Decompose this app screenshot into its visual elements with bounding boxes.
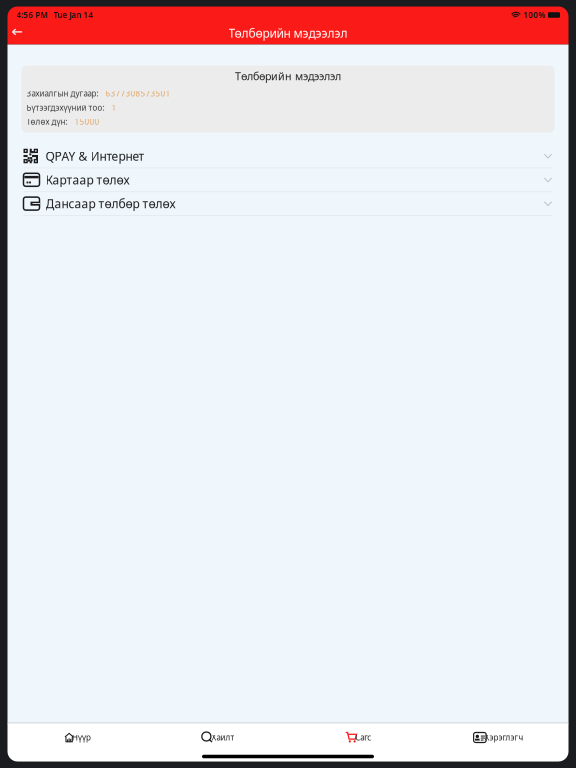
staticText: 1: [111, 102, 116, 113]
staticText: Бүтээгдэхүүний тоо:: [26, 102, 104, 113]
button[interactable]: Картаар төлөх: [7, 168, 568, 192]
staticText: QPAY & Интернет: [45, 148, 144, 164]
button[interactable]: Дансаар төлбөр төлөх: [7, 192, 568, 216]
staticText: Захиалгын дугаар:: [26, 88, 98, 99]
staticText: 15000: [74, 116, 99, 127]
staticText: Хайлт: [211, 732, 234, 743]
staticText: Картаар төлөх: [45, 172, 129, 188]
staticText: Төлөх дүн:: [26, 116, 67, 127]
button[interactable]: Хэрэглэгч: [428, 724, 568, 750]
staticText: Tue Jan 14: [53, 10, 93, 20]
staticText: Дансаар төлбөр төлөх: [45, 196, 175, 211]
staticText: Хэрэглэгч: [484, 732, 523, 743]
staticText: Нүүр: [72, 732, 91, 743]
staticText: Төлбөрийн мэдээлэл: [235, 69, 341, 83]
staticText: 4:56 PM: [16, 10, 47, 20]
button[interactable]: Нүүр: [7, 724, 148, 750]
staticText: Сагс: [355, 732, 371, 743]
button[interactable]: Back: [7, 24, 28, 41]
staticText: 6377308573501: [105, 88, 170, 99]
button[interactable]: QPAY & Интернет: [7, 144, 568, 168]
staticText: Төлбөрийн мэдээлэл: [228, 25, 347, 41]
button[interactable]: Хайлт: [148, 724, 288, 750]
button[interactable]: Сагс: [288, 724, 428, 750]
staticText: 100%: [523, 10, 545, 20]
